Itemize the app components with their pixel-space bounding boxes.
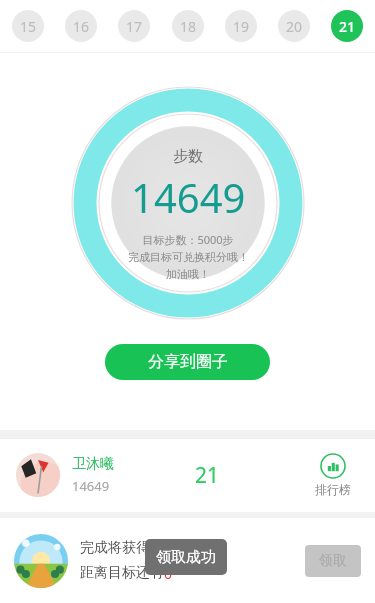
staticText: 完成目标可兑换积分哦！	[128, 250, 249, 264]
button[interactable]: 19	[225, 10, 257, 42]
button[interactable]: 排行榜	[307, 453, 359, 497]
staticText: 完成将获得	[80, 539, 150, 557]
staticText: 排行榜	[315, 482, 351, 497]
button[interactable]: 20	[278, 10, 310, 42]
staticText: 19	[233, 17, 250, 36]
staticText: 分享到圈子	[148, 352, 228, 372]
staticText: 0	[164, 564, 173, 583]
button[interactable]: 分享到圈子	[105, 344, 270, 380]
staticText: 步数	[173, 147, 203, 166]
staticText: 领取成功	[156, 548, 216, 567]
staticText: 16	[73, 17, 90, 36]
staticText: 领取	[319, 552, 347, 570]
staticText: 卫沐曦	[72, 455, 114, 473]
staticText: 20	[286, 17, 303, 36]
staticText: 奖励30积分	[150, 539, 223, 558]
staticText: 17	[126, 17, 143, 36]
button[interactable]: 15	[12, 10, 44, 42]
staticText: 加油哦！	[166, 267, 210, 281]
staticText: 目标步数：5000步	[142, 232, 234, 247]
staticText: 14649	[131, 170, 246, 224]
button[interactable]: 18	[172, 10, 204, 42]
button[interactable]	[14, 534, 68, 588]
staticText: 14649	[72, 477, 110, 495]
button[interactable]: 领取	[305, 545, 361, 577]
button[interactable]: 17	[118, 10, 150, 42]
staticText: 21	[195, 461, 220, 490]
staticText: 距离目标还有	[80, 564, 164, 582]
button[interactable]	[16, 453, 60, 497]
staticText: 21	[339, 17, 356, 36]
button[interactable]: 16	[65, 10, 97, 42]
staticText: 18	[180, 17, 197, 36]
button[interactable]: 21	[331, 10, 363, 42]
staticText: 15	[20, 17, 37, 36]
